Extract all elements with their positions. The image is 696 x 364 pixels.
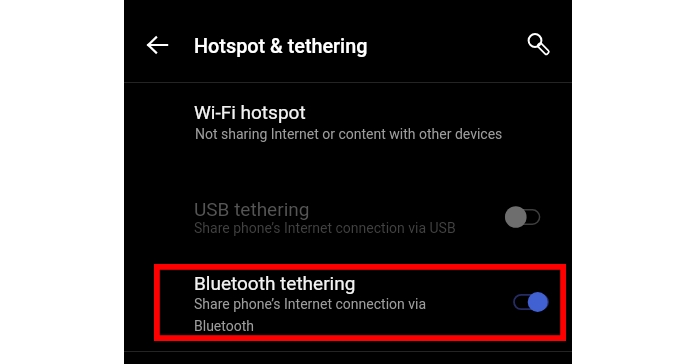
button[interactable]: Wi-Fi hotspot [124, 82, 572, 150]
staticText: Not sharing Internet or content with oth… [195, 126, 503, 142]
staticText: Share phone’s Internet connection via Bl… [194, 296, 427, 335]
button[interactable]: Search [512, 21, 558, 67]
button[interactable]: Back [135, 22, 181, 68]
button[interactable]: Bluetooth tethering toggle, on [501, 288, 551, 316]
button[interactable]: USB tethering [124, 180, 572, 246]
staticText: Share phone’s Internet connection via US… [194, 220, 456, 236]
staticText: Bluetooth tethering [194, 272, 356, 294]
staticText: USB tethering [194, 198, 310, 220]
staticText: Wi-Fi hotspot [194, 101, 306, 123]
button[interactable]: USB tethering toggle, off [503, 203, 553, 231]
staticText: Hotspot & tethering [194, 35, 368, 58]
button[interactable]: Bluetooth tethering [124, 262, 572, 342]
